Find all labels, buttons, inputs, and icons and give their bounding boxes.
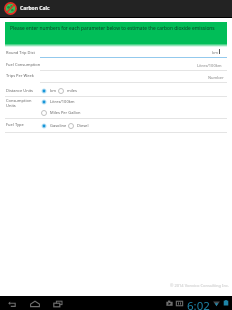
other: Screenshot bbox=[166, 300, 173, 307]
staticText: Consumption bbox=[6, 98, 32, 103]
staticText: Fuel Type bbox=[6, 122, 24, 127]
button[interactable]: Gasoline bbox=[40, 121, 67, 130]
button[interactable]: Diesel bbox=[67, 121, 89, 130]
staticText: Please enter numbers for each parameter … bbox=[10, 25, 215, 32]
staticText: Litres/100km bbox=[197, 63, 222, 68]
button[interactable]: Miles Per Gallon bbox=[40, 108, 81, 117]
other: Wi-Fi bbox=[213, 300, 220, 307]
staticText: km bbox=[50, 88, 56, 93]
button[interactable]: Carbon Calc bbox=[0, 0, 232, 17]
staticText: Round Trip Dist bbox=[6, 50, 35, 55]
staticText: km bbox=[212, 50, 218, 55]
button[interactable]: Home bbox=[30, 299, 40, 309]
other: Storage bbox=[176, 300, 183, 307]
staticText: Litres/100km bbox=[50, 99, 75, 104]
staticText: Units bbox=[6, 103, 16, 108]
button[interactable]: Litres/100km bbox=[40, 97, 75, 106]
button[interactable]: km bbox=[40, 86, 56, 95]
staticText: Carbon Calc bbox=[20, 5, 50, 12]
staticText: 6:02 bbox=[187, 298, 210, 310]
staticText: Number bbox=[208, 75, 224, 80]
button[interactable]: miles bbox=[57, 86, 77, 95]
staticText: Diesel bbox=[77, 123, 89, 128]
staticText: Miles Per Gallon bbox=[50, 110, 81, 115]
staticText: Distance Units bbox=[6, 88, 34, 93]
button[interactable]: Back bbox=[8, 299, 18, 309]
button[interactable]: Please enter numbers for each parameter … bbox=[5, 22, 227, 47]
staticText: Fuel Consumption bbox=[6, 62, 41, 67]
staticText: miles bbox=[67, 88, 77, 93]
staticText: Gasoline bbox=[50, 123, 67, 128]
other: Battery bbox=[223, 300, 229, 306]
staticText: Trips Per Week bbox=[6, 73, 34, 78]
button[interactable]: Recent apps bbox=[53, 299, 63, 309]
staticText: © 2014 Vonvico Consulting Inc. bbox=[0, 283, 229, 289]
